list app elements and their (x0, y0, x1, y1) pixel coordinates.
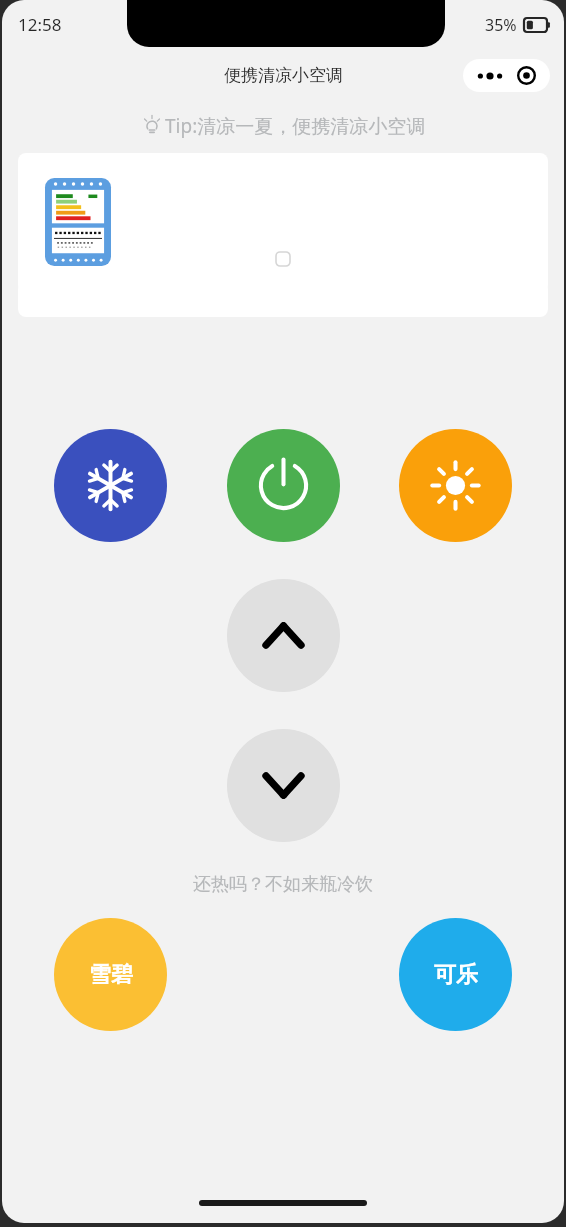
button[interactable]: Power (227, 429, 340, 542)
button[interactable]: Increase (227, 579, 340, 692)
button[interactable]: Heat mode (399, 429, 512, 542)
staticText: 35% (485, 14, 517, 36)
button[interactable]: 可乐 (399, 918, 512, 1031)
button[interactable]: 雪碧 (54, 918, 167, 1031)
staticText: 雪碧 (89, 961, 133, 989)
staticText: 12:58 (18, 13, 62, 36)
staticText: 便携清凉小空调 (224, 65, 343, 86)
staticText: Tip:清凉一夏，便携清凉小空调 (165, 113, 426, 139)
button[interactable]: Cool mode (54, 429, 167, 542)
staticText: 还热吗？不如来瓶冷饮 (2, 873, 564, 896)
button[interactable] (18, 153, 548, 293)
button[interactable]: Decrease (227, 729, 340, 842)
staticText: 可乐 (434, 961, 478, 989)
button[interactable]: Menu and close (463, 59, 550, 92)
